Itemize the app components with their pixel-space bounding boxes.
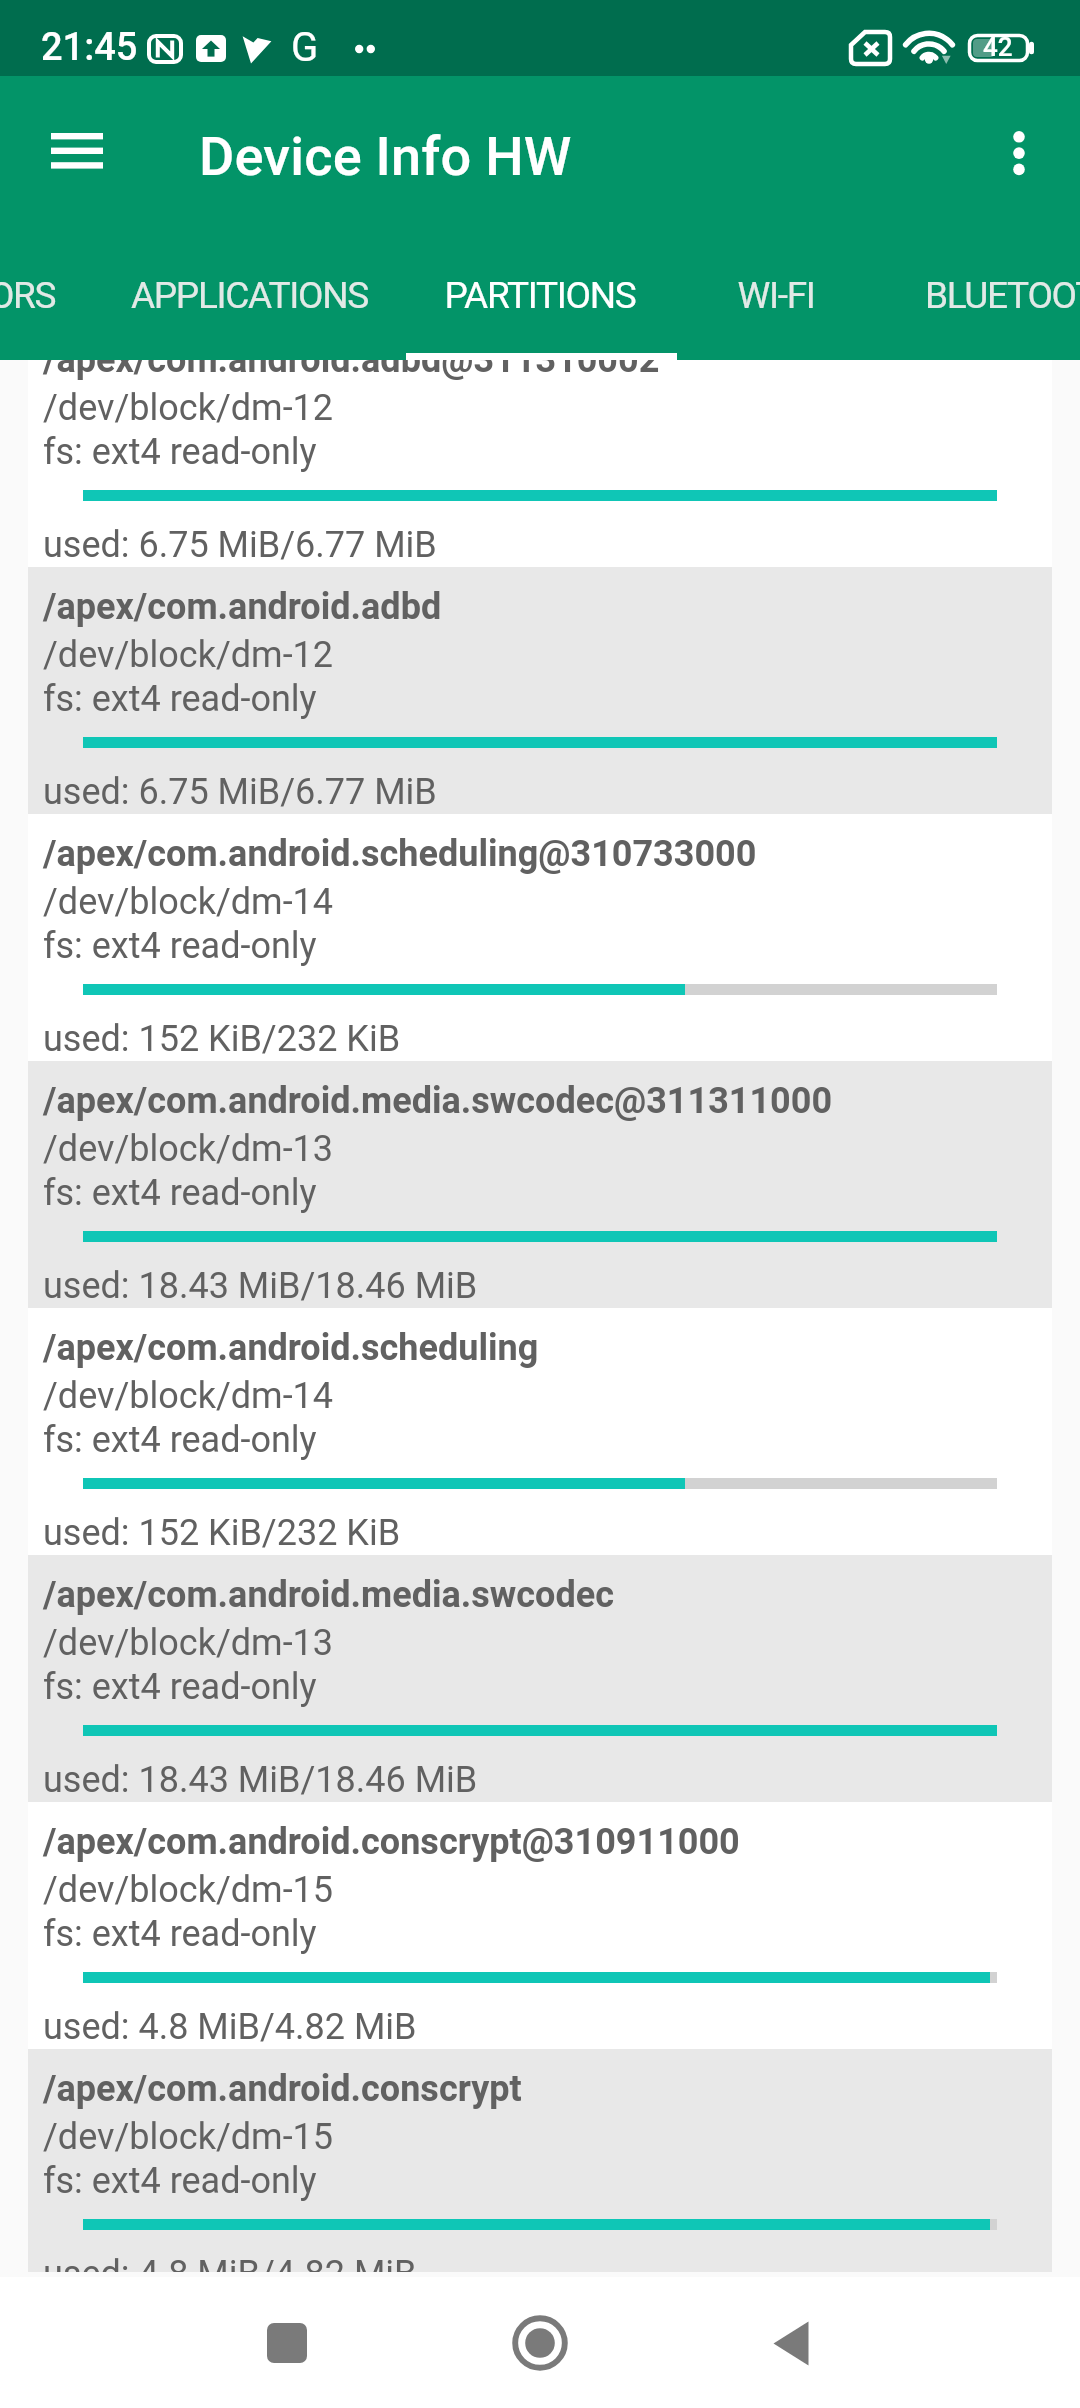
staticText: fs: ext4 read-only	[43, 678, 317, 720]
button[interactable]: Recent apps	[227, 2283, 347, 2403]
staticText: /apex/com.android.adbd	[43, 586, 442, 628]
staticText: used: 18.43 MiB/18.46 MiB	[43, 1759, 478, 1801]
staticText: fs: ext4 read-only	[43, 925, 317, 967]
staticText: used: 4.8 MiB/4.82 MiB	[43, 2253, 417, 2272]
staticText: fs: ext4 read-only	[43, 431, 317, 473]
staticText: used: 152 KiB/232 KiB	[43, 1018, 401, 1060]
staticText: used: 18.43 MiB/18.46 MiB	[43, 1265, 478, 1307]
staticText: /dev/block/dm-15	[43, 1869, 334, 1911]
button[interactable]: BLUETOOTH	[879, 240, 1080, 360]
staticText: /apex/com.android.media.swcodec	[43, 1574, 614, 1616]
staticText: /apex/com.android.conscrypt	[43, 2068, 522, 2110]
button[interactable]: /apex/com.android.media.swcodec	[28, 1555, 1052, 1802]
staticText: fs: ext4 read-only	[43, 2160, 317, 2202]
staticText: /dev/block/dm-14	[43, 881, 334, 923]
staticText: /apex/com.android.conscrypt@310911000	[43, 1821, 740, 1863]
staticText: /dev/block/dm-12	[43, 634, 334, 676]
staticText: Device Info HW	[199, 125, 572, 188]
button[interactable]: More options	[967, 106, 1071, 210]
button[interactable]: APPLICATIONS	[92, 240, 407, 360]
staticText: used: 152 KiB/232 KiB	[43, 1512, 401, 1554]
button[interactable]: SENSORS	[0, 240, 92, 360]
button[interactable]: Home	[480, 2283, 600, 2403]
staticText: SENSORS	[0, 274, 92, 317]
staticText: used: 6.75 MiB/6.77 MiB	[43, 771, 437, 813]
staticText: /apex/com.android.media.swcodec@31131100…	[43, 1080, 833, 1122]
staticText: PARTITIONS	[407, 274, 673, 317]
staticText: used: 4.8 MiB/4.82 MiB	[43, 2006, 417, 2048]
staticText: fs: ext4 read-only	[43, 1913, 317, 1955]
button[interactable]: /apex/com.android.scheduling@310733000	[28, 814, 1052, 1061]
staticText: /dev/block/dm-13	[43, 1622, 334, 1664]
staticText: /dev/block/dm-12	[43, 387, 334, 429]
staticText: /apex/com.android.scheduling@310733000	[43, 833, 757, 875]
staticText: /dev/block/dm-15	[43, 2116, 334, 2158]
button[interactable]: WI-FI	[673, 240, 879, 360]
staticText: WI-FI	[673, 274, 879, 317]
staticText: 21:45	[41, 25, 138, 70]
button[interactable]: Back	[731, 2283, 851, 2403]
staticText: fs: ext4 read-only	[43, 1666, 317, 1708]
staticText: APPLICATIONS	[92, 274, 407, 317]
button[interactable]: /apex/com.android.media.swcodec@31131100…	[28, 1061, 1052, 1308]
button[interactable]: /apex/com.android.scheduling	[28, 1308, 1052, 1555]
button[interactable]: PARTITIONS	[407, 240, 673, 360]
button[interactable]: Open navigation drawer	[25, 106, 129, 210]
staticText: used: 6.75 MiB/6.77 MiB	[43, 524, 437, 566]
button[interactable]: /apex/com.android.conscrypt@310911000	[28, 1802, 1052, 2049]
staticText: BLUETOOTH	[879, 274, 1080, 317]
button[interactable]: /apex/com.android.adbd@311310002	[28, 360, 1052, 567]
staticText: /dev/block/dm-14	[43, 1375, 334, 1417]
staticText: 42	[983, 32, 1013, 62]
staticText: G	[291, 24, 319, 71]
staticText: /apex/com.android.scheduling	[43, 1327, 539, 1369]
button[interactable]: /apex/com.android.conscrypt	[28, 2049, 1052, 2272]
staticText: /dev/block/dm-13	[43, 1128, 334, 1170]
staticText: fs: ext4 read-only	[43, 1172, 317, 1214]
staticText: /apex/com.android.adbd@311310002	[43, 360, 660, 381]
button[interactable]: /apex/com.android.adbd	[28, 567, 1052, 814]
staticText: fs: ext4 read-only	[43, 1419, 317, 1461]
